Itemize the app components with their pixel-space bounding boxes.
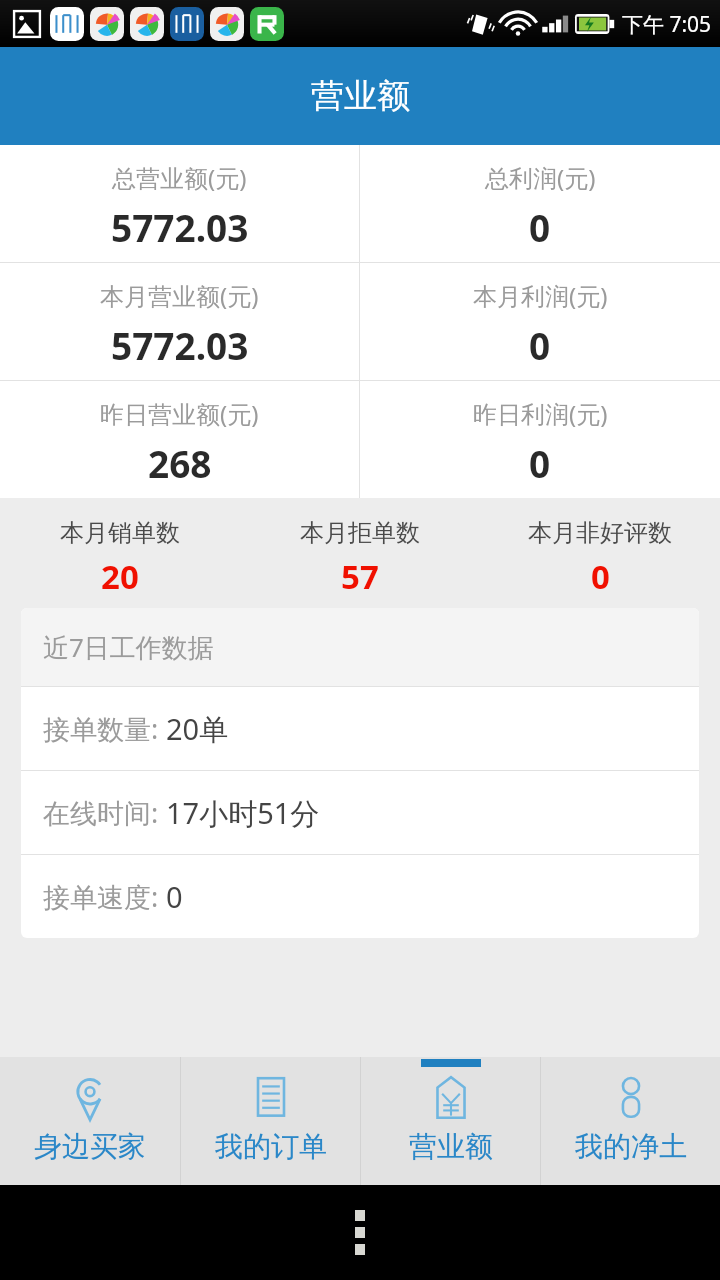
staticText: 昨日利润(元) [473, 397, 608, 430]
staticText: 接单数量: [43, 710, 166, 747]
staticText: 20单 [166, 709, 229, 749]
staticText: 营业额 [311, 75, 410, 117]
staticText: 本月销单数 [60, 518, 180, 548]
button[interactable]: 在线时间: [21, 771, 699, 854]
button[interactable]: 本月营业额(元) [0, 263, 359, 380]
button[interactable]: 本月利润(元) [360, 263, 720, 380]
staticText: 身边买家 [34, 1129, 146, 1164]
button[interactable]: 昨日利润(元) [360, 381, 720, 498]
staticText: 营业额 [409, 1129, 493, 1164]
button[interactable]: 身边买家 [0, 1057, 180, 1185]
staticText: 我的订单 [215, 1129, 327, 1164]
button[interactable]: 总利润(元) [360, 145, 720, 262]
button[interactable]: 我的订单 [181, 1057, 360, 1185]
button[interactable]: 我的净土 [541, 1057, 720, 1185]
staticText: 本月拒单数 [300, 518, 420, 548]
staticText: 接单速度: [43, 878, 166, 915]
staticText: 下午 7:05 [622, 10, 712, 39]
button[interactable]: 总营业额(元) [0, 145, 359, 262]
staticText: 5772.03 [111, 320, 249, 370]
staticText: 我的净土 [575, 1129, 687, 1164]
staticText: 0 [591, 554, 610, 599]
staticText: 总利润(元) [485, 161, 596, 194]
staticText: 5772.03 [111, 202, 249, 252]
button[interactable]: 本月非好评数 [480, 498, 720, 608]
staticText: 本月营业额(元) [100, 279, 259, 312]
staticText: 17小时51分 [166, 793, 320, 833]
staticText: 0 [529, 202, 551, 252]
staticText: 0 [529, 320, 551, 370]
button[interactable]: 本月销单数 [0, 498, 240, 608]
staticText: 0 [529, 438, 551, 488]
staticText: 0 [166, 877, 183, 916]
staticText: 本月利润(元) [473, 279, 608, 312]
staticText: 57 [341, 554, 379, 599]
button[interactable]: 营业额 [361, 1057, 540, 1185]
staticText: 昨日营业额(元) [100, 397, 259, 430]
button[interactable]: 昨日营业额(元) [0, 381, 359, 498]
staticText: 近7日工作数据 [43, 629, 214, 665]
staticText: 在线时间: [43, 794, 166, 831]
button[interactable]: 接单速度: [21, 855, 699, 938]
staticText: 268 [148, 438, 212, 488]
button[interactable]: 近7日工作数据 [21, 608, 699, 686]
staticText: 本月非好评数 [528, 518, 672, 548]
staticText: 20 [101, 554, 139, 599]
staticText: 总营业额(元) [112, 161, 247, 194]
button[interactable]: 接单数量: [21, 687, 699, 770]
button[interactable]: 本月拒单数 [240, 498, 480, 608]
